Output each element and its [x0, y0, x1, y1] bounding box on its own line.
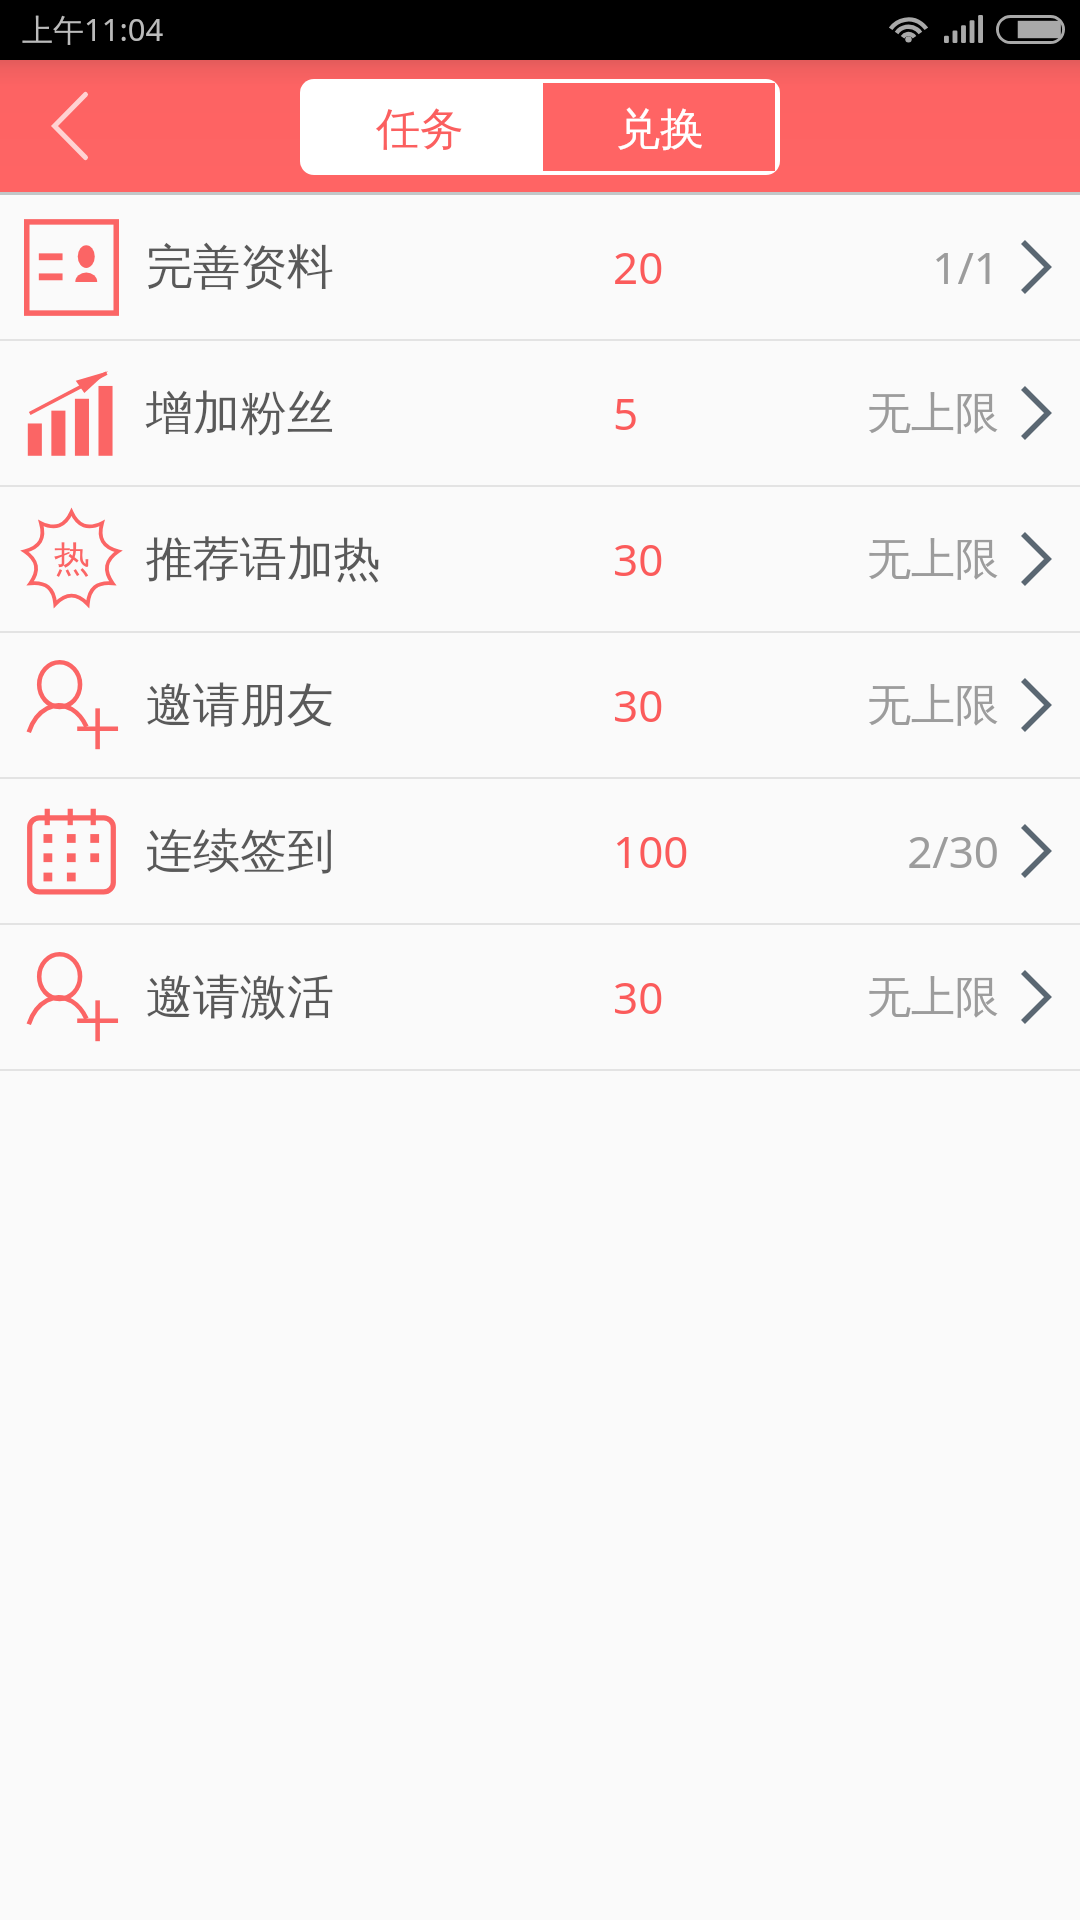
other: Open 邀请激活 [1020, 969, 1051, 1025]
staticText: 连续签到 [146, 822, 334, 881]
staticText: 20 [613, 237, 664, 297]
staticText: 邀请激活 [146, 968, 334, 1027]
staticText: 无上限 [867, 678, 999, 733]
button[interactable]: 任务 [300, 79, 540, 175]
staticText: 100 [613, 821, 689, 881]
staticText: 任务 [376, 102, 464, 157]
staticText: 热 [54, 536, 90, 581]
other: Open 连续签到 [1020, 823, 1051, 879]
button[interactable]: 热 [0, 487, 1080, 631]
staticText: 完善资料 [146, 238, 334, 297]
button[interactable]: 邀请朋友 [0, 633, 1080, 777]
other: Open 邀请朋友 [1020, 677, 1051, 733]
staticText: 无上限 [867, 532, 999, 587]
button[interactable]: 兑换 [540, 79, 780, 175]
other: Open 完善资料 [1020, 239, 1051, 295]
other: Open 增加粉丝 [1020, 385, 1051, 441]
staticText: 上午11:04 [22, 8, 164, 50]
staticText: 增加粉丝 [146, 384, 334, 443]
staticText: 无上限 [867, 386, 999, 441]
staticText: 兑换 [616, 102, 704, 157]
staticText: 推荐语加热 [146, 530, 381, 589]
button[interactable]: 邀请激活 [0, 925, 1080, 1069]
staticText: 30 [613, 529, 664, 589]
button[interactable]: 增加粉丝 [0, 341, 1080, 485]
button[interactable]: Back [26, 82, 114, 170]
staticText: 30 [613, 967, 664, 1027]
staticText: 1/1 [932, 237, 999, 297]
staticText: 5 [613, 383, 639, 443]
button[interactable]: 连续签到 [0, 779, 1080, 923]
other: Open 推荐语加热 [1020, 531, 1051, 587]
staticText: 2/30 [907, 821, 999, 881]
staticText: 邀请朋友 [146, 676, 334, 735]
staticText: 30 [613, 675, 664, 735]
staticText: 无上限 [867, 970, 999, 1025]
button[interactable]: 完善资料 [0, 195, 1080, 339]
